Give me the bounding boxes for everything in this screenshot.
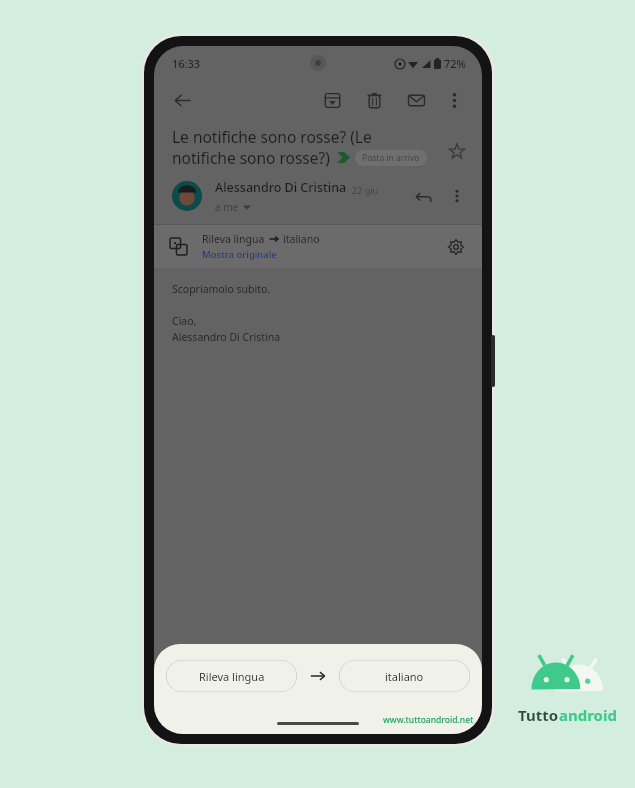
staticText: Le notifiche sono rosse? (Le [172,126,372,147]
button[interactable]: Reply all [270,647,365,689]
staticText: notifiche sono rosse?) [172,147,330,168]
staticText: Alessandro Di Cristina [215,179,347,196]
staticText: Tutto [518,705,559,725]
button[interactable]: Delete [360,86,388,114]
button[interactable]: Rileva lingua [154,225,482,268]
button[interactable]: Mark unread [402,86,430,114]
button[interactable]: Archive [318,86,346,114]
button[interactable]: More options [440,86,468,114]
staticText: Rileva lingua [199,669,265,684]
button[interactable]: Reply [408,181,438,211]
button[interactable]: a me [215,200,251,214]
button[interactable]: Forward [375,647,470,689]
staticText: Ciao, [172,314,197,328]
staticText: android [559,705,617,725]
staticText: italiano [283,232,320,246]
staticText: 16:33 [172,56,201,71]
staticText: www.tuttoandroid.net [383,714,474,726]
staticText: 22 giu [352,184,379,196]
staticText: italiano [385,669,424,684]
button[interactable]: Back [168,86,196,114]
staticText: Mostra originale [202,248,277,261]
button[interactable]: More [444,183,470,209]
button[interactable]: Star [442,136,472,166]
button[interactable]: Reply [166,647,260,689]
button[interactable]: Rileva lingua [166,660,297,692]
staticText: a me [215,200,239,214]
staticText: Alessandro Di Cristina [172,330,281,344]
button[interactable]: Translate settings [442,233,470,261]
button[interactable]: italiano [339,660,470,692]
staticText: 72% [444,56,466,71]
staticText: Posta in arrivo [362,152,420,164]
staticText: Rileva lingua [202,232,265,246]
staticText: Scopriamolo subito. [172,282,271,296]
